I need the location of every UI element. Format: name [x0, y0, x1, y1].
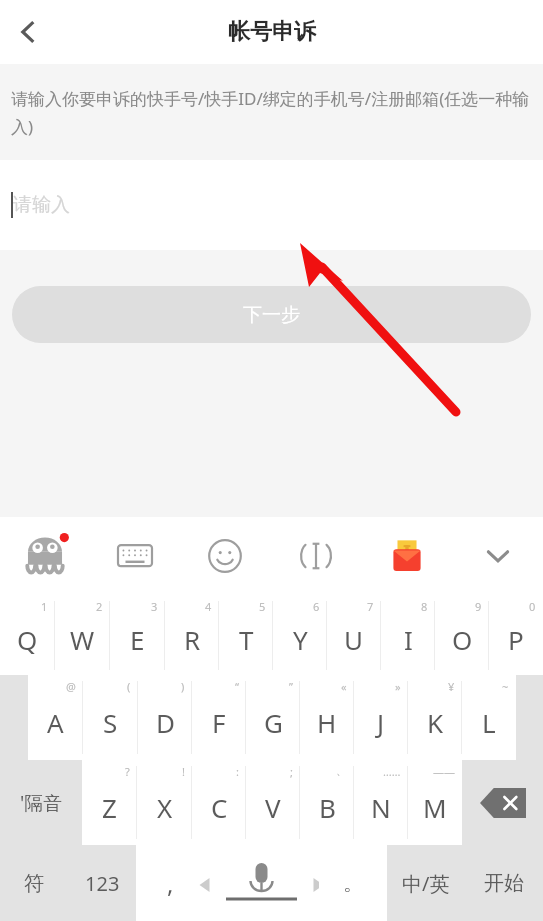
staticText: 4 [205, 599, 212, 614]
button[interactable]: Hide keyboard [452, 517, 543, 595]
button[interactable]: 0 [489, 595, 543, 675]
staticText: ¥ [448, 679, 455, 694]
staticText: M [423, 790, 447, 825]
button[interactable]: 8 [381, 595, 435, 675]
button[interactable]: 7 [327, 595, 381, 675]
staticText: 、 [336, 764, 347, 778]
button[interactable]: ~ [462, 675, 516, 760]
button[interactable]: » [354, 675, 408, 760]
button[interactable]: …… [354, 760, 408, 845]
button[interactable]: '隔音 [0, 760, 82, 845]
button[interactable]: ; [246, 760, 300, 845]
button[interactable]: 9 [435, 595, 489, 675]
staticText: 0 [529, 599, 536, 614]
button[interactable]: 下一步 [12, 286, 531, 343]
staticText: …… [383, 764, 401, 779]
staticText: U [344, 622, 364, 657]
staticText: 6 [313, 599, 320, 614]
staticText: W [70, 622, 95, 657]
staticText: « [341, 679, 347, 694]
button[interactable]: 开始 [465, 845, 543, 921]
button[interactable]: 符 [0, 845, 68, 921]
staticText: H [317, 705, 337, 740]
staticText: X [157, 790, 173, 825]
button[interactable]: Text selection [270, 517, 361, 595]
staticText: 开始 [484, 871, 524, 896]
staticText: 3 [151, 599, 158, 614]
button[interactable]: Octopus assistant [0, 517, 90, 595]
staticText: '隔音 [20, 790, 63, 816]
staticText: C [211, 790, 228, 825]
staticText: K [427, 705, 444, 740]
staticText: T [239, 622, 254, 657]
button[interactable]: ? [82, 760, 137, 845]
staticText: G [264, 705, 283, 740]
staticText: “ [235, 679, 239, 694]
button[interactable]: “ [192, 675, 246, 760]
staticText: A [47, 705, 64, 740]
staticText: 2 [96, 599, 103, 614]
staticText: ? [125, 764, 130, 779]
button[interactable]: Back [0, 4, 56, 60]
button[interactable]: ” [246, 675, 300, 760]
staticText: P [508, 622, 524, 657]
staticText: Z [102, 790, 117, 825]
staticText: J [377, 705, 385, 740]
staticText: Y [293, 622, 308, 657]
button[interactable]: Emoji [180, 517, 270, 595]
staticText: ) [181, 679, 185, 694]
button[interactable]: Voice input, space [204, 845, 319, 921]
button[interactable]: 3 [110, 595, 165, 675]
staticText: 5 [259, 599, 266, 614]
staticText: 123 [85, 870, 120, 897]
button[interactable]: 中/英 [387, 845, 465, 921]
staticText: 中/英 [402, 870, 450, 897]
button[interactable]: @ [28, 675, 83, 760]
staticText: I [404, 622, 413, 657]
staticText: N [371, 790, 391, 825]
button[interactable]: Backspace [462, 760, 543, 845]
button[interactable]: 5 [219, 595, 273, 675]
staticText: E [130, 622, 145, 657]
staticText: S [103, 705, 118, 740]
button[interactable]: 4 [165, 595, 219, 675]
staticText: 帐号申诉 [228, 18, 316, 46]
staticText: 请输入 [13, 193, 70, 217]
staticText: D [156, 705, 175, 740]
button[interactable]: —— [408, 760, 462, 845]
staticText: 符 [24, 871, 44, 896]
staticText: ~ [502, 679, 509, 694]
staticText: » [395, 679, 401, 694]
button[interactable]: ! [137, 760, 192, 845]
staticText: V [265, 790, 281, 825]
staticText: B [319, 790, 336, 825]
staticText: —— [433, 764, 455, 779]
staticText: O [452, 622, 473, 657]
button[interactable]: 请输入 [0, 160, 543, 250]
button[interactable]: ) [138, 675, 192, 760]
button[interactable]: 6 [273, 595, 327, 675]
staticText: ( [127, 679, 131, 694]
button[interactable]: ( [83, 675, 138, 760]
staticText: Q [17, 622, 38, 657]
staticText: F [212, 705, 226, 740]
staticText: 下一步 [243, 303, 300, 327]
button[interactable]: Keyboard layout [90, 517, 180, 595]
button[interactable]: 。 [319, 845, 387, 921]
button[interactable]: 123 [68, 845, 136, 921]
button[interactable]: 1 [0, 595, 55, 675]
staticText: @ [66, 679, 76, 694]
staticText: 。 [343, 871, 363, 896]
button[interactable]: ¥ [408, 675, 462, 760]
button[interactable]: 、 [300, 760, 354, 845]
button[interactable]: Red packet [361, 517, 452, 595]
staticText: L [482, 705, 496, 740]
staticText: 8 [421, 599, 428, 614]
staticText: : [236, 764, 239, 779]
button[interactable]: 2 [55, 595, 110, 675]
button[interactable]: , [136, 845, 204, 921]
staticText: 7 [367, 599, 374, 614]
button[interactable]: « [300, 675, 354, 760]
button[interactable]: : [192, 760, 246, 845]
staticText: ! [182, 764, 185, 779]
